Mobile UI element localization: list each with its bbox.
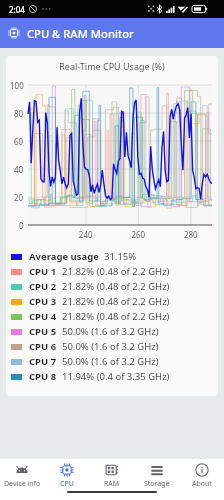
button[interactable]: CPU 7 xyxy=(6,354,218,369)
staticText: 21.82% (0.48 of 2.2 GHz) xyxy=(62,310,170,323)
staticText: CPU 5 xyxy=(29,325,57,338)
button[interactable]: CPU 2 xyxy=(6,279,218,294)
staticText: 50.0% (1.6 of 3.2 GHz) xyxy=(62,355,159,368)
button[interactable]: CPU 5 xyxy=(6,324,218,339)
staticText: 2:04 xyxy=(9,4,25,15)
button[interactable]: CPU 6 xyxy=(6,339,218,354)
button[interactable]: Storage xyxy=(134,459,179,489)
staticText: CPU 2 xyxy=(29,280,57,293)
staticText: 21.82% (0.48 of 2.2 GHz) xyxy=(62,265,170,278)
staticText: Device info xyxy=(4,479,41,489)
staticText: About xyxy=(192,479,212,489)
staticText: 11.94% (0.4 of 3.35 GHz) xyxy=(62,370,170,383)
staticText: CPU 6 xyxy=(29,340,57,353)
staticText: CPU 4 xyxy=(29,310,57,323)
button[interactable]: Average usage xyxy=(6,249,218,264)
button[interactable]: Device info xyxy=(0,459,44,489)
button[interactable]: CPU & RAM Monitor xyxy=(0,18,224,48)
staticText: CPU xyxy=(60,479,74,489)
staticText: CPU & RAM Monitor xyxy=(27,26,134,41)
staticText: CPU 8 xyxy=(29,370,57,383)
staticText: CPU 3 xyxy=(29,295,57,308)
staticText: RAM xyxy=(104,479,120,489)
button[interactable]: RAM xyxy=(89,459,134,489)
staticText: 50.0% (1.6 of 3.2 GHz) xyxy=(62,325,159,338)
button[interactable]: About xyxy=(179,459,224,489)
staticText: 21.82% (0.48 of 2.2 GHz) xyxy=(62,295,170,308)
button[interactable]: CPU 1 xyxy=(6,264,218,279)
button[interactable]: CPU 8 xyxy=(6,369,218,384)
staticText: CPU 7 xyxy=(29,355,57,368)
button[interactable]: CPU 3 xyxy=(6,294,218,309)
staticText: Average usage xyxy=(29,250,99,263)
staticText: Storage xyxy=(144,479,170,489)
button[interactable]: CPU 4 xyxy=(6,309,218,324)
staticText: 21.82% (0.48 of 2.2 GHz) xyxy=(62,280,170,293)
staticText: 50.0% (1.6 of 3.2 GHz) xyxy=(62,340,159,353)
staticText: CPU 1 xyxy=(29,265,57,278)
staticText: 31.15% xyxy=(104,250,137,263)
staticText: Real-Time CPU Usage (%) xyxy=(6,60,218,72)
button[interactable]: CPU xyxy=(44,459,89,489)
